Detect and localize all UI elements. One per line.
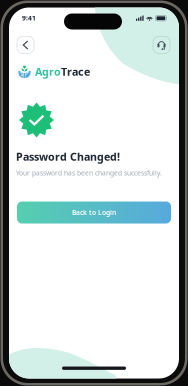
staticText: Trace [61, 64, 90, 79]
button[interactable]: Support [153, 36, 170, 53]
button[interactable]: Back [17, 36, 34, 53]
button[interactable]: Back to Login [17, 201, 171, 223]
staticText: Back to Login [72, 208, 116, 217]
staticText: Password Changed! [16, 149, 120, 164]
staticText: Agro [35, 64, 61, 79]
staticText: Your password has been changed successfu… [16, 168, 162, 177]
staticText: 9:41 [22, 13, 36, 22]
